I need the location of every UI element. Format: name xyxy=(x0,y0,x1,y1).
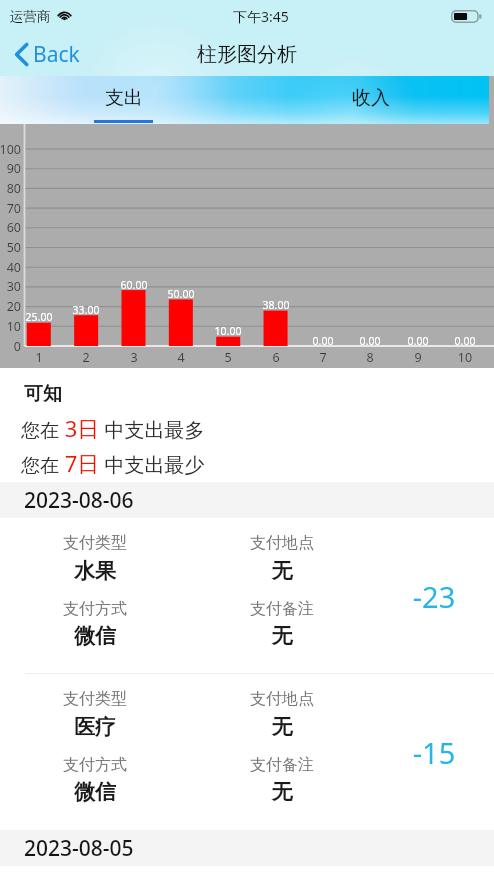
button[interactable]: 支付类型 xyxy=(0,674,494,829)
staticText: 您在 3日 中支出最多 xyxy=(21,413,205,443)
button[interactable]: Back xyxy=(14,32,80,76)
staticText: 收入 xyxy=(352,86,390,110)
staticText: 柱形图分析 xyxy=(197,42,297,67)
staticText: Back xyxy=(33,40,80,69)
staticText: 3 xyxy=(114,349,154,366)
button[interactable]: 支出 xyxy=(0,76,247,124)
staticText: 无 xyxy=(250,558,314,584)
staticText: 无 xyxy=(250,779,314,805)
staticText: 支付类型 xyxy=(63,533,127,553)
staticText: 支出 xyxy=(105,86,143,110)
staticText: 医疗 xyxy=(63,714,127,740)
staticText: 2023-08-05 xyxy=(24,834,134,863)
staticText: 无 xyxy=(250,714,314,740)
staticText: 0.00 xyxy=(445,334,485,348)
staticText: 33.00 xyxy=(66,303,106,317)
staticText: 无 xyxy=(250,623,314,649)
staticText: 支付地点 xyxy=(250,689,314,709)
staticText: 支付地点 xyxy=(250,533,314,553)
staticText: 4 xyxy=(161,349,201,366)
staticText: 50.00 xyxy=(161,287,201,301)
staticText: 40 xyxy=(0,259,21,276)
staticText: 微信 xyxy=(63,623,127,649)
staticText: 9 xyxy=(398,349,438,366)
staticText: 25.00 xyxy=(19,310,59,324)
staticText: 您在 7日 中支出最少 xyxy=(21,448,205,478)
staticText: 30 xyxy=(0,278,21,295)
staticText: 0.00 xyxy=(303,334,343,348)
staticText: 5 xyxy=(208,349,248,366)
staticText: 70 xyxy=(0,200,21,217)
button[interactable]: 收入 xyxy=(247,76,494,124)
staticText: 90 xyxy=(0,160,21,177)
staticText: 60.00 xyxy=(114,278,154,292)
staticText: 下午3:45 xyxy=(233,7,289,26)
staticText: 支付备注 xyxy=(250,755,314,775)
staticText: 10.00 xyxy=(208,324,248,338)
staticText: 0 xyxy=(0,338,21,355)
staticText: 支付方式 xyxy=(63,755,127,775)
staticText: 10 xyxy=(445,349,485,366)
staticText: 80 xyxy=(0,180,21,197)
staticText: 6 xyxy=(256,349,296,366)
staticText: 微信 xyxy=(63,779,127,805)
staticText: 0.00 xyxy=(350,334,390,348)
staticText: 支付方式 xyxy=(63,599,127,619)
staticText: 运营商 xyxy=(10,8,51,25)
staticText: 100 xyxy=(0,141,21,158)
staticText: 50 xyxy=(0,239,21,256)
staticText: 水果 xyxy=(63,558,127,584)
staticText: 20 xyxy=(0,298,21,315)
staticText: 2 xyxy=(66,349,106,366)
staticText: 38.00 xyxy=(256,298,296,312)
staticText: -23 xyxy=(394,577,474,616)
staticText: -15 xyxy=(394,733,474,772)
staticText: 支付备注 xyxy=(250,599,314,619)
staticText: 8 xyxy=(350,349,390,366)
staticText: 2023-08-06 xyxy=(24,486,134,515)
staticText: 1 xyxy=(19,349,59,366)
staticText: 10 xyxy=(0,318,21,335)
staticText: 7 xyxy=(303,349,343,366)
staticText: 0.00 xyxy=(398,334,438,348)
button[interactable]: 支付类型 xyxy=(0,518,494,673)
staticText: 支付类型 xyxy=(63,689,127,709)
staticText: 60 xyxy=(0,219,21,236)
staticText: 可知 xyxy=(24,382,62,406)
